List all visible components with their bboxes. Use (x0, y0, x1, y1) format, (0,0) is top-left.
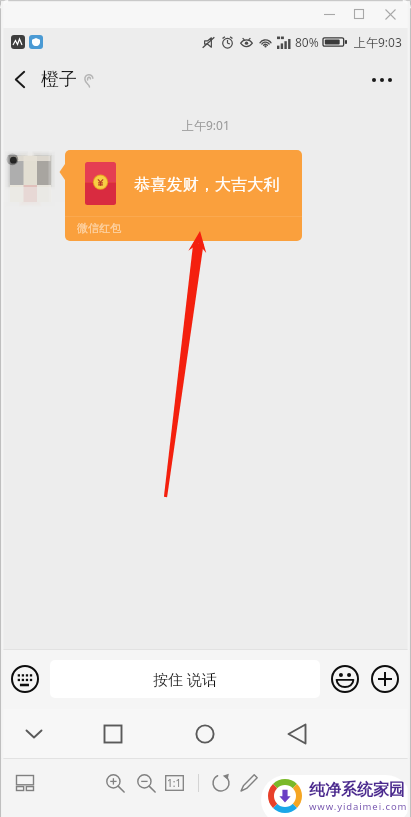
staticText: 上午9:03 (354, 34, 402, 50)
button[interactable]: Close (375, 0, 405, 28)
button[interactable]: Maximize (344, 0, 374, 28)
button[interactable]: Zoom in (91, 759, 139, 807)
staticText: 上午9:01 (182, 117, 230, 133)
staticText: 1:1 (167, 776, 182, 790)
staticText: www.yidaimei.com (309, 800, 408, 813)
button[interactable]: Layout (1, 759, 49, 807)
button[interactable]: Avatar (3, 150, 55, 202)
button[interactable]: Emoji (331, 665, 359, 693)
button[interactable]: Actual size (163, 774, 185, 792)
button[interactable]: 按住 说话 (50, 660, 320, 698)
staticText: 橙子 (41, 68, 77, 91)
button[interactable]: Recents (90, 709, 136, 758)
button[interactable]: 恭喜发财，大吉大利 (59, 150, 302, 241)
staticText: 按住 说话 (153, 669, 217, 689)
button[interactable]: Hide (11, 709, 57, 758)
button[interactable]: Keyboard (11, 665, 39, 693)
staticText: 恭喜发财，大吉大利 (134, 174, 280, 194)
staticText: 80% (295, 34, 319, 50)
button[interactable]: Actual size (150, 759, 198, 807)
staticText: 纯净系统家园 (309, 780, 405, 800)
button[interactable]: Edit (225, 759, 273, 807)
button[interactable]: More options (358, 56, 406, 103)
button[interactable]: Rotate (197, 759, 245, 807)
button[interactable]: Zoom out (122, 759, 170, 807)
button[interactable]: Back (0, 56, 39, 103)
button[interactable]: Home (182, 709, 228, 758)
staticText: 微信红包 (77, 221, 121, 235)
button[interactable]: Back (274, 709, 320, 758)
button[interactable]: More functions (371, 665, 399, 693)
button[interactable]: Minimize (314, 0, 344, 28)
